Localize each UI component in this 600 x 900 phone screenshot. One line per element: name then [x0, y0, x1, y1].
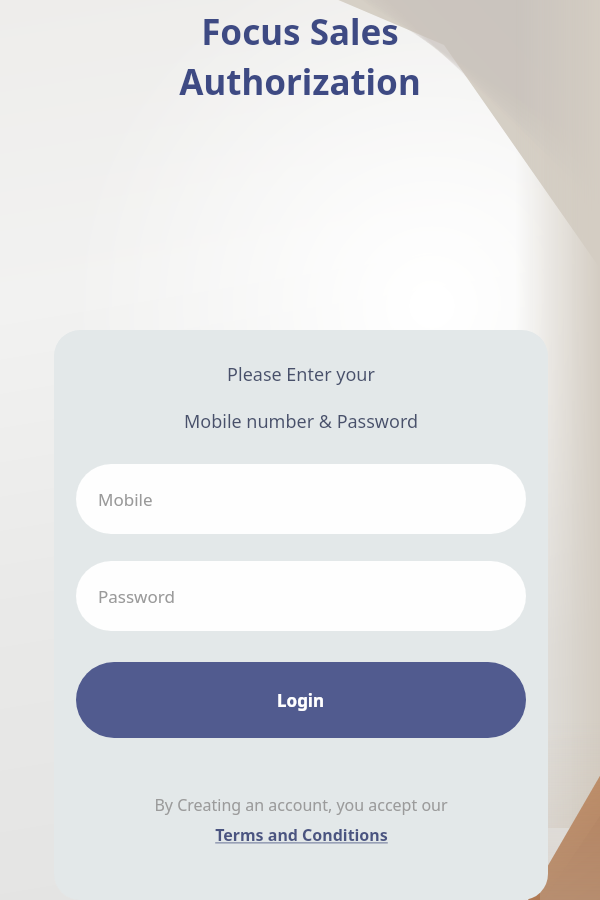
- staticText: Terms and Conditions: [213, 824, 390, 846]
- button[interactable]: Terms and Conditions: [211, 824, 392, 846]
- staticText: Focus Sales: [201, 8, 399, 56]
- button[interactable]: Mobile: [76, 464, 526, 534]
- button[interactable]: Password: [76, 561, 526, 631]
- button[interactable]: Login: [76, 662, 526, 738]
- staticText: Password: [98, 585, 175, 608]
- staticText: Authorization: [179, 58, 421, 106]
- staticText: Please Enter your: [76, 362, 526, 387]
- staticText: By Creating an account, you accept our: [76, 794, 526, 816]
- staticText: Login: [277, 689, 325, 712]
- staticText: Mobile: [98, 488, 153, 511]
- staticText: Mobile number & Password: [76, 409, 526, 434]
